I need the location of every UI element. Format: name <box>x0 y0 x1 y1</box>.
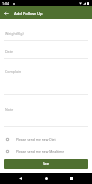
button[interactable]: Please send me new Mealtime <box>0 145 92 157</box>
staticText: Note <box>5 107 14 112</box>
button[interactable]: Date <box>0 41 92 59</box>
button[interactable]: Back <box>16 174 25 183</box>
button[interactable]: Recent apps <box>67 174 76 183</box>
button[interactable]: Complain <box>0 59 92 95</box>
button[interactable]: Home <box>42 174 51 183</box>
button[interactable]: Note <box>0 95 92 127</box>
staticText: Save <box>43 162 50 166</box>
staticText: Weight(Kg) <box>5 31 24 36</box>
staticText: Date <box>5 49 13 54</box>
staticText: Complain <box>5 69 22 74</box>
staticText: Please send me new Mealtime <box>16 149 65 154</box>
button[interactable]: Please send me new Diet <box>0 133 92 145</box>
staticText: 1:04 <box>2 1 10 6</box>
button[interactable]: Weight(Kg) <box>0 22 92 41</box>
button[interactable]: Back <box>0 7 13 20</box>
staticText: Please send me new Diet <box>16 137 56 142</box>
button[interactable]: Save <box>4 159 88 169</box>
staticText: Add Follow Up <box>14 11 43 17</box>
